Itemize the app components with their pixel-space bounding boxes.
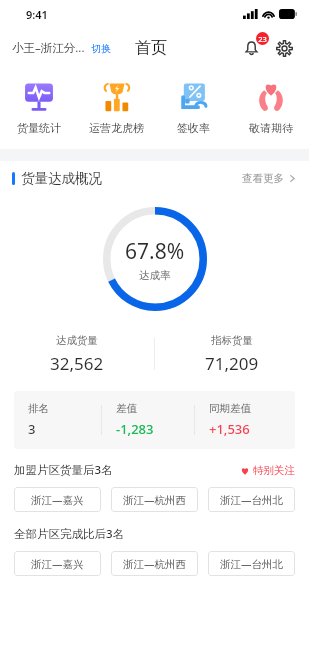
staticText: +1,536 [209,420,250,438]
staticText: 签收率 [177,121,210,135]
button[interactable]: 货量统计 [0,80,78,135]
button[interactable]: 运营龙虎榜 [78,80,155,135]
staticText: 浙江—嘉兴 [31,493,84,507]
staticText: 差值 [116,402,137,415]
staticText: 9:41 [26,7,48,22]
staticText: 67.8% [125,237,185,266]
staticText: 全部片区完成比后3名 [14,526,125,542]
staticText: 同期差值 [209,402,251,415]
button[interactable]: 浙江—台州北 [208,487,295,512]
staticText: 运营龙虎榜 [89,121,144,135]
button[interactable]: 签收率 [155,80,232,135]
button[interactable]: 浙江—杭州西 [111,551,198,576]
button[interactable]: 浙江—台州北 [208,551,295,576]
staticText: 达成货量 [56,334,98,347]
staticText: 查看更多 [242,172,284,185]
staticText: 32,562 [50,352,104,375]
button[interactable]: Notifications, 23 unread [236,33,266,63]
staticText: 浙江—台州北 [220,557,283,571]
staticText: 货量统计 [17,121,61,135]
staticText: 浙江—嘉兴 [31,557,84,571]
staticText: 首页 [135,38,167,58]
staticText: 3 [28,420,36,438]
button[interactable]: 浙江—嘉兴 [14,551,101,576]
staticText: 货量达成概况 [21,170,102,187]
button[interactable]: 特别关注 [240,464,295,477]
staticText: 浙江—杭州西 [123,557,186,571]
button[interactable]: 小王–浙江分... [12,40,111,56]
staticText: 切换 [91,42,111,55]
staticText: -1,283 [116,420,154,438]
button[interactable]: 达成货量 [0,334,154,375]
staticText: 指标货量 [211,334,253,347]
button[interactable]: 浙江—杭州西 [111,487,198,512]
staticText: 71,209 [205,352,259,375]
staticText: 达成率 [139,269,171,282]
button[interactable]: 货量达成概况 [0,161,309,195]
staticText: 浙江—台州北 [220,493,283,507]
staticText: 小王–浙江分... [12,40,85,56]
staticText: 浙江—杭州西 [123,493,186,507]
button[interactable]: 敬请期待 [232,80,309,135]
staticText: 加盟片区货量后3名 [14,462,113,478]
staticText: 特别关注 [253,464,295,477]
staticText: 排名 [28,402,49,415]
button[interactable]: 指标货量 [155,334,309,375]
button[interactable]: 浙江—嘉兴 [14,487,101,512]
button[interactable]: Settings [269,33,299,63]
staticText: 敬请期待 [249,121,293,135]
staticText: 23 [258,34,267,44]
